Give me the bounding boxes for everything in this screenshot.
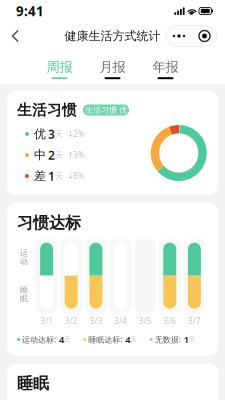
staticText: 健康生活方式统计 bbox=[64, 29, 160, 43]
staticText: 周报 bbox=[46, 59, 72, 75]
staticText: 1 bbox=[184, 333, 189, 346]
staticText: 天 bbox=[55, 129, 63, 139]
staticText: 天 bbox=[55, 150, 63, 160]
staticText: 3% bbox=[73, 150, 85, 160]
button[interactable]: 月报 bbox=[92, 57, 132, 81]
staticText: 3/3 bbox=[89, 316, 102, 326]
staticText: 睡眠达标: bbox=[88, 334, 122, 345]
staticText: 3/5 bbox=[139, 316, 152, 326]
staticText: 运 bbox=[20, 248, 28, 258]
staticText: 天 bbox=[130, 335, 137, 344]
button[interactable]: Close bbox=[192, 25, 217, 46]
staticText: 3/7 bbox=[188, 316, 201, 326]
staticText: 1 bbox=[48, 168, 55, 184]
staticText: ↓ bbox=[67, 171, 74, 181]
button[interactable]: Back bbox=[0, 22, 30, 50]
staticText: 4 bbox=[125, 333, 130, 346]
staticText: 眠 bbox=[20, 294, 28, 303]
staticText: 习惯达标 bbox=[17, 213, 81, 233]
staticText: 睡 bbox=[20, 285, 28, 295]
staticText: 中 bbox=[34, 148, 46, 162]
staticText: 优 bbox=[34, 127, 46, 141]
button[interactable]: 周报 bbox=[39, 57, 79, 81]
button[interactable]: More bbox=[166, 25, 192, 46]
staticText: 3 bbox=[48, 126, 55, 142]
staticText: 9:41 bbox=[16, 2, 44, 20]
staticText: 天 bbox=[55, 171, 63, 181]
staticText: 2 bbox=[48, 147, 55, 163]
staticText: 睡眠 bbox=[17, 374, 49, 393]
staticText: 差 bbox=[34, 169, 46, 183]
staticText: 动 bbox=[20, 257, 28, 266]
button[interactable]: 年报 bbox=[145, 57, 185, 81]
staticText: 8% bbox=[73, 171, 85, 181]
staticText: 3/6 bbox=[163, 316, 176, 326]
staticText: 无数据: bbox=[155, 334, 181, 345]
staticText: 天 bbox=[64, 335, 71, 344]
staticText: 年报 bbox=[152, 59, 178, 75]
staticText: 生活习惯 优 bbox=[85, 105, 127, 115]
staticText: 月报 bbox=[99, 59, 125, 75]
staticText: 2% bbox=[73, 129, 85, 139]
staticText: 运动达标: bbox=[22, 334, 56, 345]
staticText: 3/2 bbox=[65, 316, 78, 326]
staticText: ↑ bbox=[67, 150, 74, 160]
staticText: 4 bbox=[59, 333, 64, 346]
staticText: 生活习惯 bbox=[17, 101, 77, 119]
staticText: 天 bbox=[189, 335, 196, 344]
staticText: 3/4 bbox=[114, 316, 127, 326]
staticText: 3/1 bbox=[40, 316, 53, 326]
staticText: ↓ bbox=[67, 129, 74, 139]
